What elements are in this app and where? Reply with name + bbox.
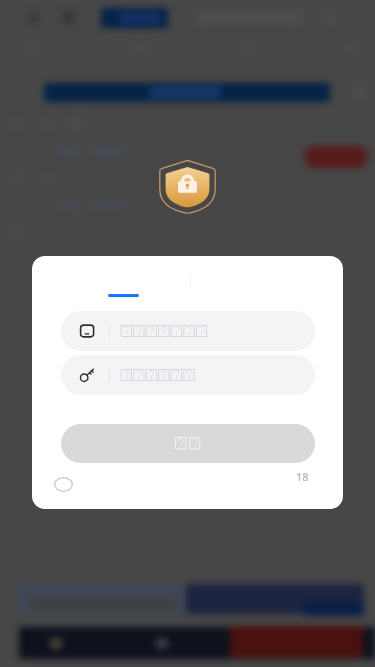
button[interactable] — [61, 424, 315, 463]
button[interactable]: Tab one — [124, 270, 188, 296]
button[interactable] — [61, 355, 315, 395]
button[interactable]: Agreement checkbox — [54, 477, 73, 492]
staticText: 18 — [296, 469, 309, 484]
button[interactable] — [61, 311, 315, 351]
